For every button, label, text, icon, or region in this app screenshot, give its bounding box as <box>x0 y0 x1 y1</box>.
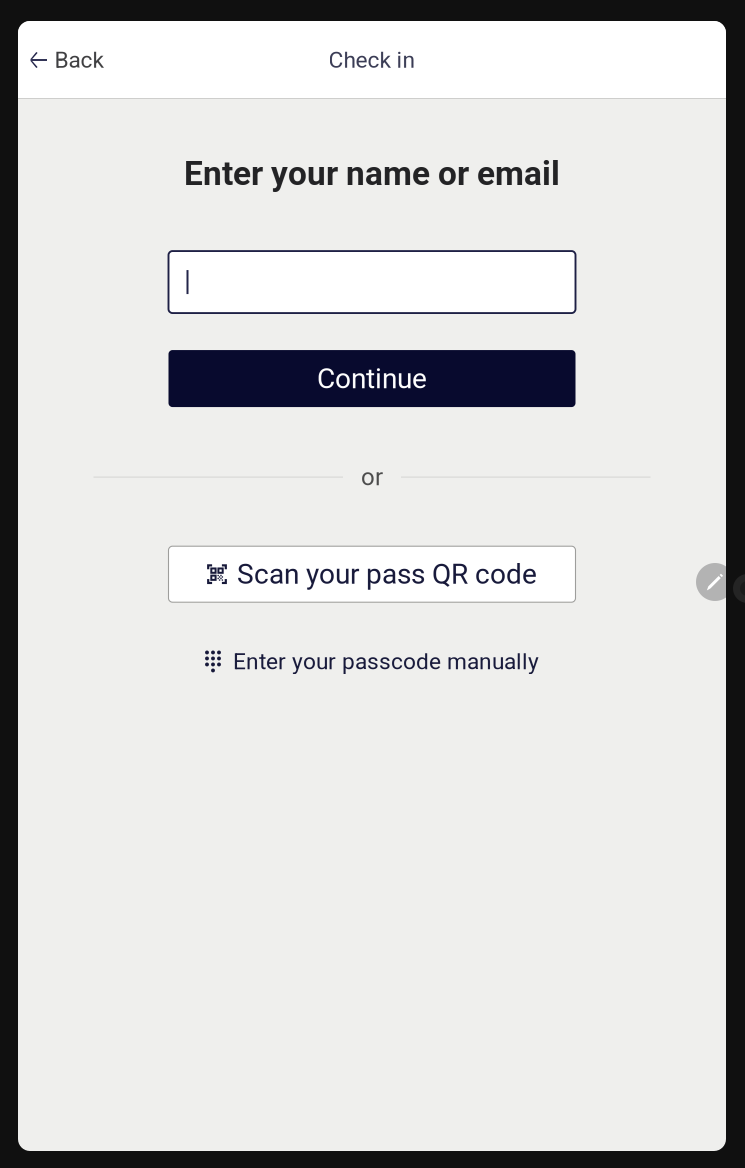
staticText: Back <box>54 47 103 73</box>
button[interactable]: Scan your pass QR code <box>168 546 575 602</box>
button[interactable]: Enter your passcode manually <box>197 638 547 685</box>
staticText: Continue <box>317 362 427 395</box>
staticText: Enter your name or email <box>184 154 560 193</box>
button[interactable]: Name or email <box>168 251 575 313</box>
button[interactable]: Back <box>18 36 115 84</box>
staticText: Enter your passcode manually <box>233 648 539 675</box>
staticText: Check in <box>328 47 415 73</box>
staticText: Scan your pass QR code <box>237 558 537 591</box>
staticText: or <box>361 463 383 491</box>
button[interactable]: Edit <box>696 563 734 601</box>
button[interactable]: Continue <box>168 350 575 407</box>
